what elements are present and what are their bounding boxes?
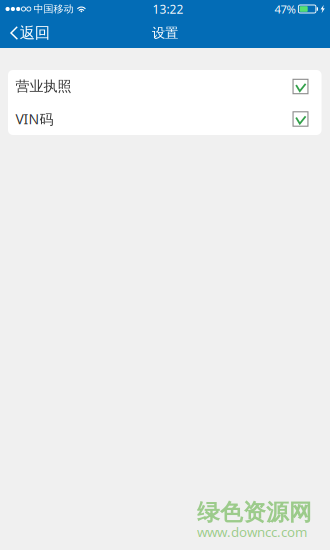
button[interactable]: VIN码 xyxy=(8,102,321,135)
staticText: www.downcc.com xyxy=(197,523,307,541)
staticText: 设置 xyxy=(152,25,178,41)
staticText: 营业执照 xyxy=(15,77,71,95)
staticText: 绿色资源网 xyxy=(197,498,312,527)
button[interactable]: 返回 xyxy=(0,18,60,48)
button[interactable]: 营业执照 xyxy=(8,70,321,102)
staticText: VIN码 xyxy=(15,109,53,128)
staticText: 返回 xyxy=(20,23,50,43)
staticText: 47% xyxy=(274,1,295,17)
staticText: 中国移动 xyxy=(33,3,73,15)
staticText: 13:22 xyxy=(152,1,183,17)
